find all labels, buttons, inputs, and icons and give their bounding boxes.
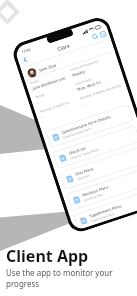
- button[interactable]: Search: [90, 32, 100, 42]
- staticText: Workout Plan: [84, 192, 104, 202]
- staticText: Diet Plans: [75, 166, 94, 177]
- button[interactable]: Edit: [98, 29, 108, 39]
- staticText: Mon, Wed, Fri: [76, 79, 102, 92]
- staticText: Questionnaire Form Details: [61, 114, 112, 135]
- staticText: Check Days: [75, 77, 92, 86]
- button[interactable]: Check-ins: [52, 125, 137, 169]
- button[interactable]: Supplement Plans: [73, 187, 137, 230]
- staticText: -: [41, 114, 45, 119]
- staticText: Workout Plans: [82, 184, 110, 198]
- staticText: Check-ins: [68, 145, 87, 156]
- staticText: Weekly: [72, 69, 86, 78]
- staticText: Number of Weeks Remaining: [79, 83, 122, 101]
- staticText: Phone: [35, 93, 46, 99]
- staticText: Use the app to monitor your progress: [6, 267, 137, 289]
- staticText: -: [36, 100, 40, 105]
- staticText: jane.doe@test.com: [32, 75, 66, 91]
- staticText: Jane Doe: [38, 63, 57, 74]
- staticText: Email: [30, 79, 39, 85]
- staticText: Supplement Plans: [89, 203, 123, 218]
- staticText: Client App: [6, 245, 89, 267]
- button[interactable]: Jane Doe: [21, 41, 115, 81]
- staticText: Questionnaire Form: [63, 126, 93, 140]
- staticText: -: [81, 101, 84, 106]
- staticText: Clara: [56, 41, 71, 52]
- staticText: Diet Plan: [77, 173, 91, 181]
- staticText: Supplement Plan: [90, 212, 115, 223]
- staticText: Number of Weeks In..: [40, 100, 71, 114]
- button[interactable]: Workout Plans: [66, 166, 137, 211]
- button[interactable]: Back: [20, 55, 30, 65]
- staticText: Check-in Frequency: [70, 59, 99, 72]
- button[interactable]: Diet Plans: [59, 146, 137, 190]
- button[interactable]: Questionnaire Form Details: [45, 104, 134, 148]
- staticText: 17:06: [21, 47, 32, 55]
- staticText: Check in Every Week: [70, 147, 99, 161]
